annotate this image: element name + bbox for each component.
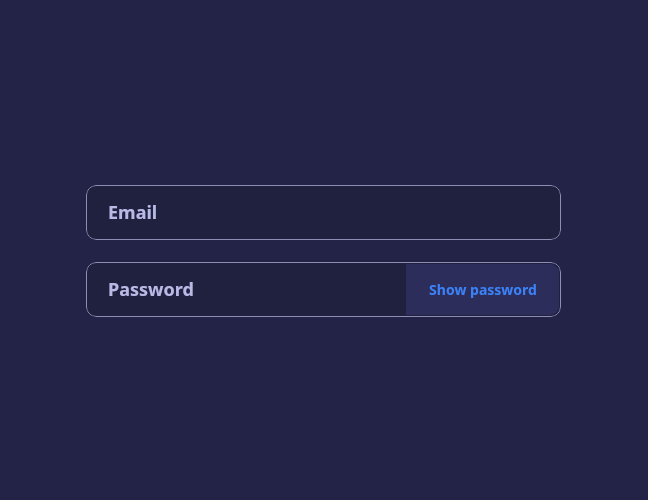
staticText: Show password [429, 280, 537, 299]
button[interactable]: Email [86, 185, 561, 240]
staticText: Email [108, 200, 158, 225]
button[interactable]: Show password [406, 264, 559, 315]
staticText: Password [108, 277, 194, 302]
